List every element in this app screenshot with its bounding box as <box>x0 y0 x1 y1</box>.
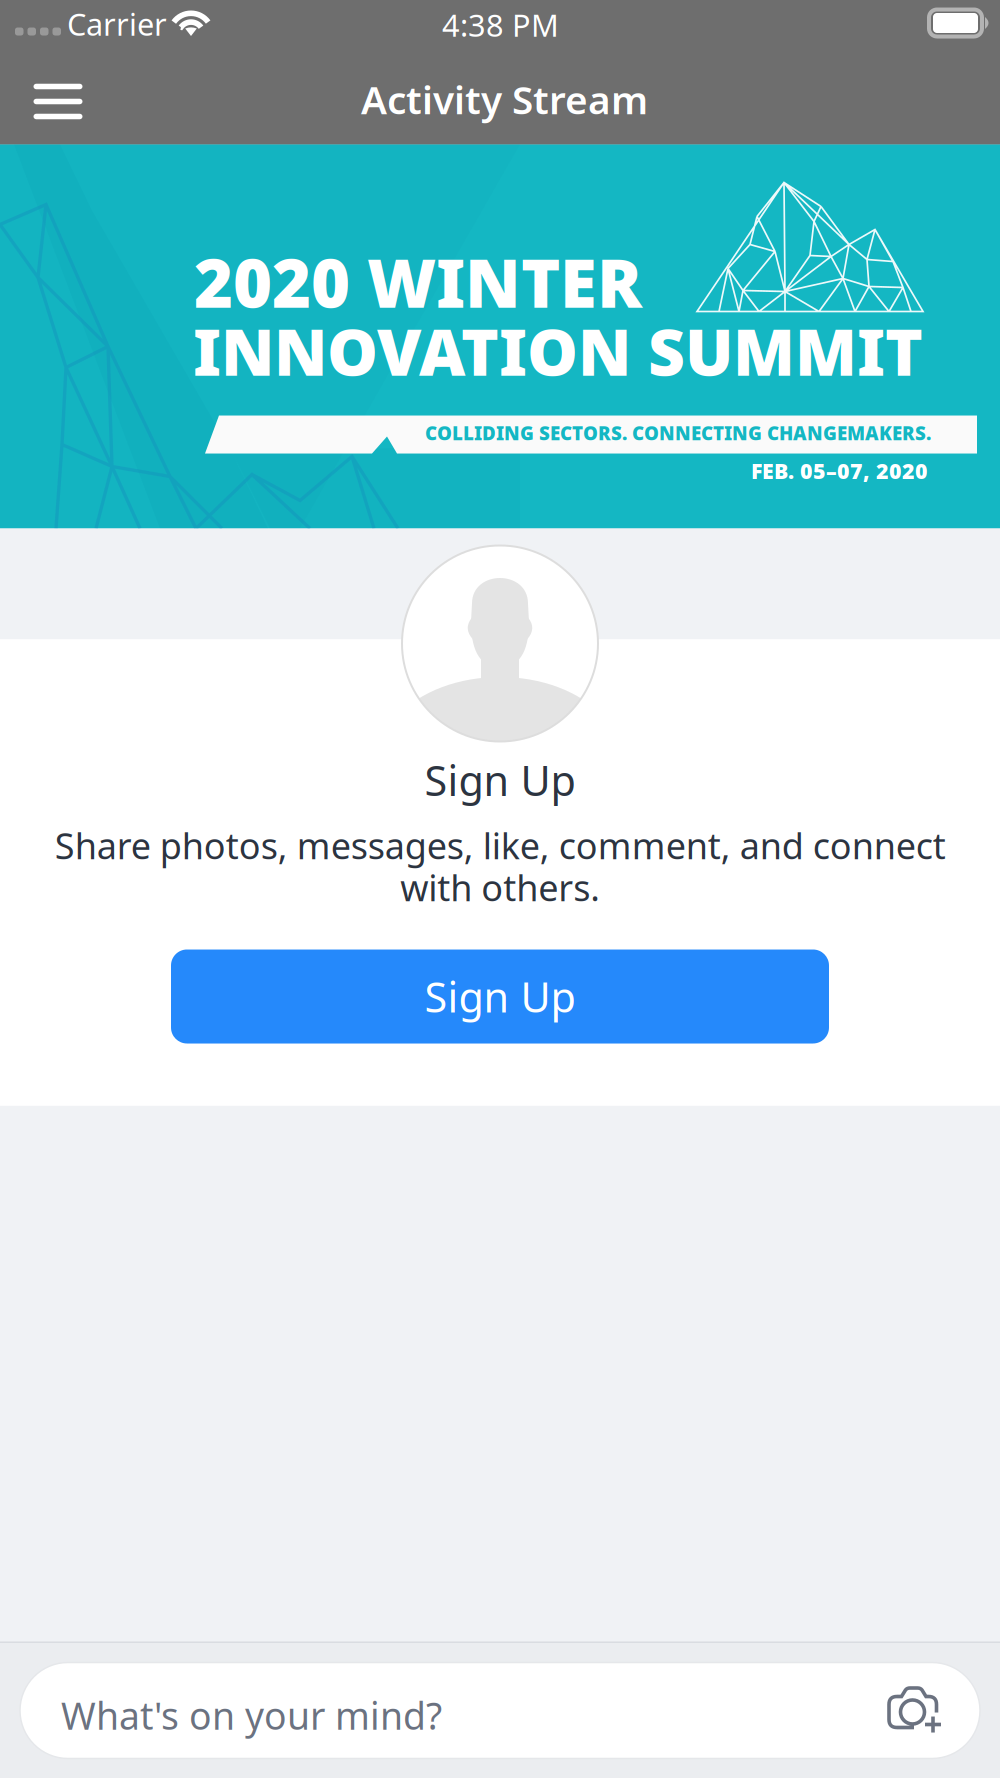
button[interactable]: Sign Up <box>171 949 829 1043</box>
staticText: Carrier <box>67 3 167 44</box>
button[interactable]: What's on your mind? <box>20 1662 980 1758</box>
staticText: Share photos, messages, like, comment, a… <box>54 821 945 911</box>
button[interactable]: Menu <box>18 65 98 137</box>
staticText: What's on your mind? <box>61 1690 442 1740</box>
staticText: INNOVATION SUMMIT <box>193 308 923 393</box>
staticText: 2020 WINTER <box>194 237 642 326</box>
staticText: COLLIDING SECTORS. CONNECTING CHANGEMAKE… <box>425 420 931 445</box>
staticText: FEB. 05–07, 2020 <box>751 456 928 485</box>
staticText: Sign Up <box>424 969 575 1024</box>
staticText: Sign Up <box>424 752 575 807</box>
staticText: Activity Stream <box>361 73 648 125</box>
staticText: 4:38 PM <box>442 4 559 45</box>
button[interactable]: Add photo <box>869 1663 961 1755</box>
